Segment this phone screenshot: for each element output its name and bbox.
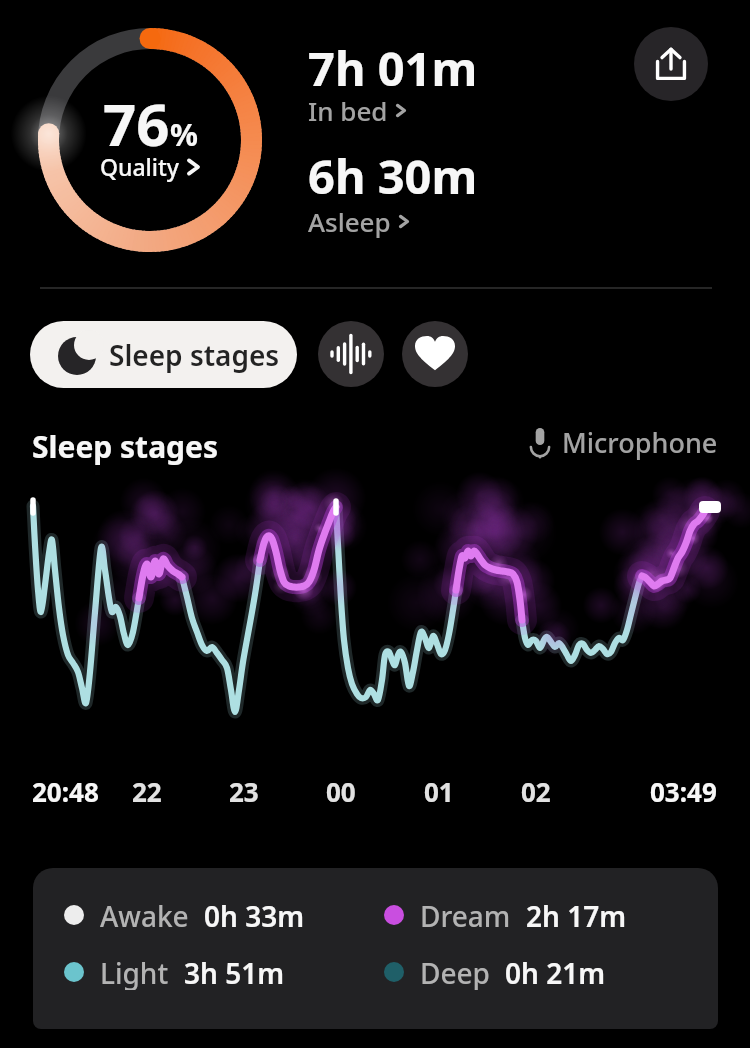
staticText: 0h 21m (505, 954, 606, 990)
staticText: 3h 51m (184, 954, 285, 990)
button[interactable]: 7h 01m (308, 36, 478, 100)
staticText: Microphone (562, 424, 718, 461)
button[interactable]: Sleep stages (30, 321, 297, 388)
staticText: 7h 01m (308, 36, 478, 100)
staticText: % (170, 113, 198, 155)
button[interactable]: Deep (384, 954, 606, 990)
button[interactable]: Dream (384, 897, 627, 933)
staticText: Quality (100, 151, 179, 182)
staticText: Sleep stages (109, 336, 280, 374)
staticText: 00 (326, 774, 356, 809)
button[interactable]: 6h 30m (308, 144, 478, 208)
staticText: 20:48 (32, 774, 99, 809)
staticText: 02 (521, 774, 551, 809)
staticText: Asleep (308, 204, 391, 239)
button[interactable] (634, 27, 708, 101)
button[interactable] (318, 321, 384, 387)
staticText: Sleep stages (32, 426, 219, 467)
button[interactable] (402, 321, 468, 387)
staticText: 01 (424, 774, 454, 809)
staticText: 23 (229, 774, 259, 809)
button[interactable]: Asleep (308, 204, 409, 239)
staticText: 0h 33m (204, 897, 305, 933)
button[interactable]: Microphone (528, 424, 718, 461)
staticText: 22 (132, 774, 162, 809)
staticText: 76 (103, 84, 170, 154)
staticText: 2h 17m (526, 897, 627, 933)
button[interactable]: Awake (64, 897, 305, 933)
staticText: 03:49 (650, 774, 717, 809)
staticText: Deep (420, 954, 490, 990)
staticText: 6h 30m (308, 144, 478, 208)
staticText: Dream (420, 897, 511, 933)
button[interactable]: In bed (308, 93, 406, 128)
button[interactable]: Quality (38, 150, 262, 182)
staticText: Awake (100, 897, 189, 933)
staticText: In bed (308, 93, 388, 128)
staticText: Light (100, 954, 169, 990)
button[interactable]: Light (64, 954, 285, 990)
